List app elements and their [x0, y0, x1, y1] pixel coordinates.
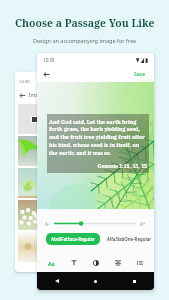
- button[interactable]: Back: [37, 272, 76, 290]
- staticText: Save: [134, 71, 146, 78]
- button[interactable]: Alignment: [107, 254, 129, 272]
- button[interactable]: Background image option: [18, 104, 40, 134]
- button[interactable]: Back: [43, 71, 50, 78]
- button[interactable]: Contrast: [85, 254, 107, 272]
- button[interactable]: AbrilFatface-Regular: [46, 233, 100, 245]
- button[interactable]: Background image option: [18, 232, 40, 262]
- button[interactable]: Aa: [40, 254, 63, 272]
- button[interactable]: Save: [132, 69, 148, 80]
- button[interactable]: AlfaSlabOne-Regular: [105, 233, 154, 245]
- staticText: Aa: [48, 260, 55, 267]
- staticText: A-: [45, 221, 50, 227]
- staticText: 12:30: [43, 57, 55, 63]
- staticText: Genesis 1:11, 13, 15: [49, 162, 147, 169]
- staticText: Image: [29, 92, 44, 99]
- staticText: 12:30: [19, 79, 30, 85]
- button[interactable]: Line spacing: [129, 254, 151, 272]
- button[interactable]: Recents: [115, 272, 154, 290]
- button[interactable]: Home: [76, 272, 115, 290]
- staticText: Design an accompanying image for free: [33, 37, 137, 44]
- staticText: AlfaSlabOne-Regular: [107, 236, 152, 242]
- button[interactable]: Background image option: [18, 136, 40, 166]
- staticText: Choose a Passage You Like: [15, 16, 155, 30]
- staticText: AbrilFatface-Regular: [51, 236, 95, 242]
- button[interactable]: Back: [19, 92, 26, 99]
- button[interactable]: Text: [63, 254, 85, 272]
- staticText: And God said, Let the earth bring forth …: [49, 118, 147, 157]
- button[interactable]: Background image option: [18, 200, 40, 230]
- button[interactable]: Background image option: [18, 168, 40, 198]
- staticText: A+: [140, 221, 146, 227]
- button[interactable]: Font size: [54, 219, 136, 228]
